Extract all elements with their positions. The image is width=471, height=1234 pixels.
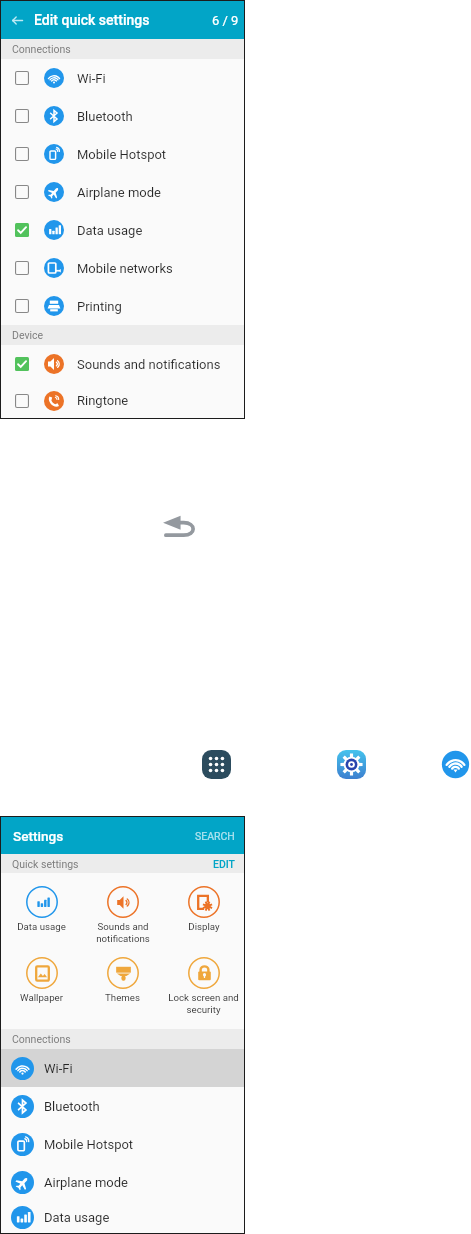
button[interactable]: Display [163, 886, 244, 932]
staticText: Device [12, 329, 44, 341]
staticText: Ringtone [77, 393, 129, 408]
staticText: Settings [13, 828, 64, 844]
button[interactable]: Ringtone [1, 383, 244, 418]
staticText: Mobile Hotspot [77, 147, 167, 162]
staticText: Connections [12, 1033, 71, 1045]
button[interactable]: Lock screen and security [163, 957, 244, 1015]
button[interactable]: Printing [1, 287, 244, 325]
button[interactable]: Airplane mode [1, 173, 244, 211]
staticText: Bluetooth [77, 109, 133, 124]
staticText: Lock screen and security [168, 992, 239, 1015]
staticText: Data usage [17, 921, 66, 932]
staticText: Mobile Hotspot [44, 1137, 134, 1152]
staticText: Themes [105, 992, 140, 1003]
staticText: Data usage [77, 223, 143, 238]
button[interactable]: Bluetooth [1, 1087, 244, 1125]
staticText: Data usage [44, 1210, 110, 1225]
staticText: Edit quick settings [34, 12, 150, 28]
button[interactable]: Back [162, 511, 197, 543]
staticText: Wi-Fi [44, 1061, 73, 1076]
button[interactable]: Mobile Hotspot [1, 135, 244, 173]
button[interactable]: Apps [202, 750, 231, 779]
staticText: Mobile networks [77, 261, 173, 276]
button[interactable]: Data usage [1, 886, 82, 932]
staticText: EDIT [213, 858, 235, 870]
button[interactable]: Settings [337, 750, 366, 779]
button[interactable]: Wi-Fi [441, 750, 470, 779]
staticText: Bluetooth [44, 1099, 100, 1114]
staticText: Connections [12, 43, 71, 55]
button[interactable]: Airplane mode [1, 1163, 244, 1201]
staticText: Airplane mode [44, 1175, 128, 1190]
button[interactable]: SEARCH [194, 826, 236, 846]
button[interactable]: Sounds and notifications [1, 345, 244, 383]
staticText: Airplane mode [77, 185, 161, 200]
button[interactable]: Data usage [1, 1201, 244, 1233]
button[interactable]: Themes [82, 957, 163, 1003]
button[interactable]: Bluetooth [1, 97, 244, 135]
button[interactable]: Data usage [1, 211, 244, 249]
button[interactable]: Wi-Fi [1, 59, 244, 97]
staticText: Sounds and notifications [77, 357, 221, 372]
button[interactable]: Wi-Fi [1, 1049, 244, 1087]
button[interactable]: Mobile Hotspot [1, 1125, 244, 1163]
button[interactable]: EDIT [213, 858, 235, 870]
staticText: SEARCH [195, 830, 235, 842]
staticText: Sounds and notifications [96, 921, 150, 944]
staticText: Printing [77, 299, 122, 314]
staticText: 6 / 9 [212, 13, 239, 28]
button[interactable]: Mobile networks [1, 249, 244, 287]
button[interactable]: Navigate up [6, 9, 29, 32]
button[interactable]: Wallpaper [1, 957, 82, 1003]
staticText: Wi-Fi [77, 71, 106, 86]
button[interactable]: Sounds and notifications [82, 886, 163, 944]
staticText: Quick settings [12, 858, 79, 870]
staticText: Wallpaper [20, 992, 63, 1003]
staticText: Display [188, 921, 220, 932]
